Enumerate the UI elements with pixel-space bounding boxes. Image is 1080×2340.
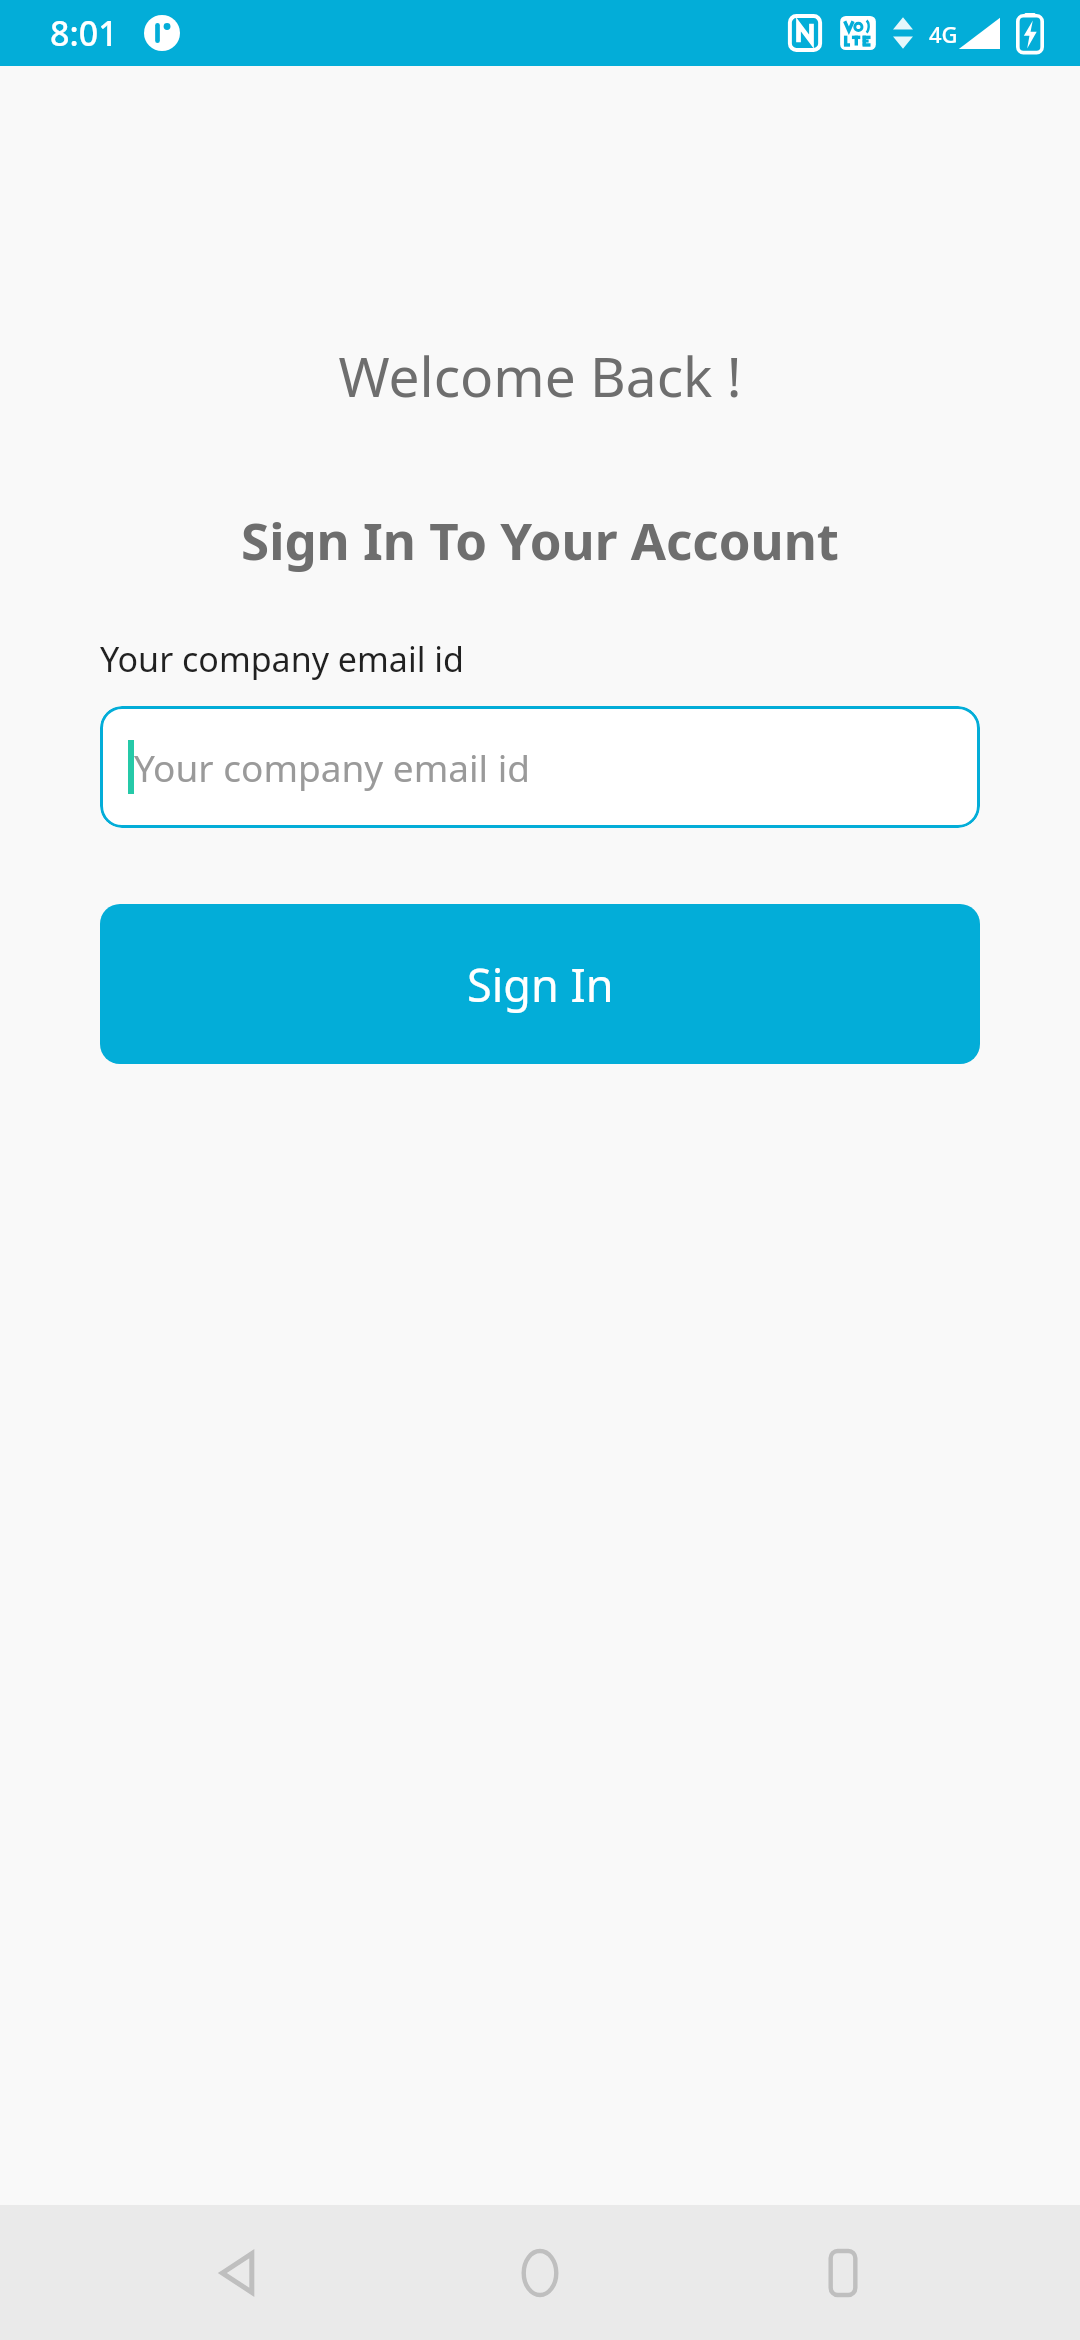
staticText: 4G bbox=[929, 19, 958, 49]
button[interactable]: Recent apps bbox=[778, 2208, 908, 2338]
button[interactable]: Home bbox=[475, 2208, 605, 2338]
staticText: Sign In To Your Account bbox=[190, 505, 890, 574]
button[interactable]: Your company email id text field bbox=[100, 706, 980, 828]
button[interactable]: Sign In bbox=[100, 904, 980, 1064]
staticText: Your company email id bbox=[100, 636, 464, 682]
staticText: Your company email id bbox=[134, 742, 531, 792]
button[interactable]: Back bbox=[173, 2208, 303, 2338]
staticText: Sign In bbox=[467, 954, 614, 1015]
staticText: 8:01 bbox=[50, 10, 118, 56]
staticText: Welcome Back ! bbox=[0, 338, 1080, 413]
